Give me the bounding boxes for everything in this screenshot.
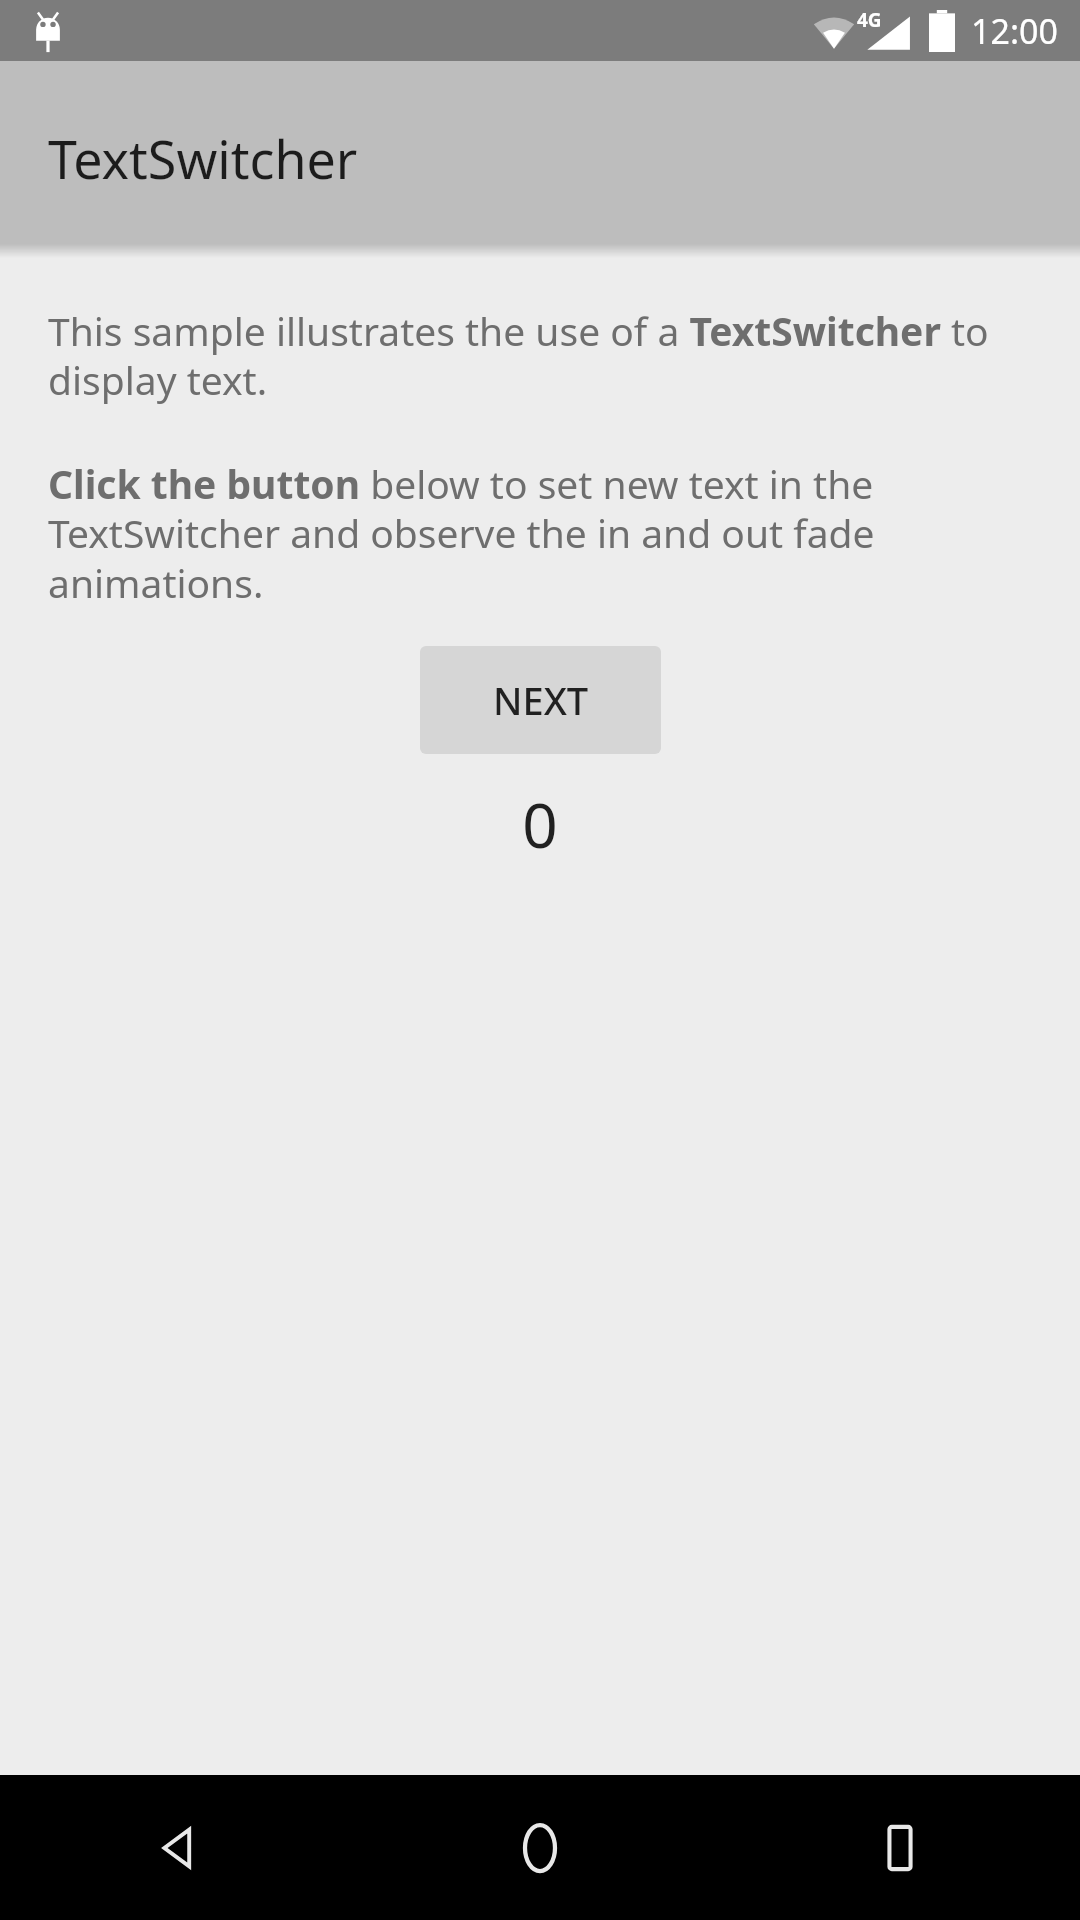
staticText: Click the button below to set new text i… <box>48 457 1032 610</box>
staticText: This sample illustrates the use of a Tex… <box>48 304 1032 407</box>
staticText: 0 <box>0 782 1080 866</box>
button[interactable]: NEXT <box>420 646 661 754</box>
staticText: 12:00 <box>971 8 1058 54</box>
button[interactable]: Recent apps <box>720 1775 1080 1920</box>
staticText: 4G <box>857 7 882 33</box>
staticText: TextSwitcher <box>48 123 358 194</box>
button[interactable]: Home <box>360 1775 720 1920</box>
button[interactable]: Back <box>0 1775 360 1920</box>
staticText: NEXT <box>493 674 589 726</box>
